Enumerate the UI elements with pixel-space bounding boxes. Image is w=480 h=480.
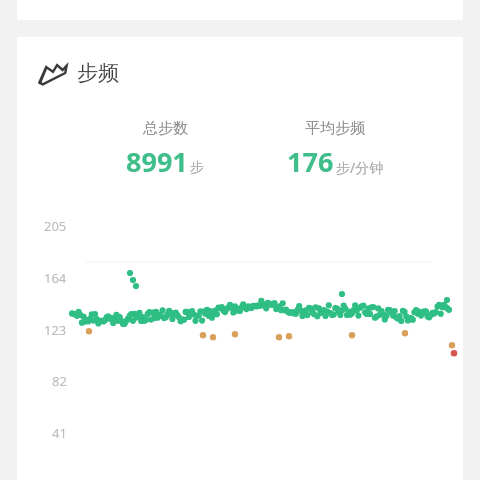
staticText: 41 xyxy=(52,424,67,442)
staticText: 8991 xyxy=(126,143,188,180)
button[interactable]: 总步数 xyxy=(92,119,238,180)
staticText: 205 xyxy=(44,217,67,235)
staticText: 平均步频 xyxy=(305,119,365,138)
staticText: 步/分钟 xyxy=(336,158,384,177)
other: Cadence xyxy=(36,58,70,88)
staticText: 总步数 xyxy=(143,119,188,138)
staticText: 步频 xyxy=(77,60,119,86)
staticText: 82 xyxy=(52,372,67,390)
button[interactable]: 平均步频 xyxy=(262,119,408,180)
staticText: 164 xyxy=(44,269,67,287)
button[interactable]: Cadence xyxy=(36,58,119,88)
staticText: 176 xyxy=(287,143,334,180)
staticText: 123 xyxy=(44,321,67,339)
staticText: 步 xyxy=(190,159,204,177)
